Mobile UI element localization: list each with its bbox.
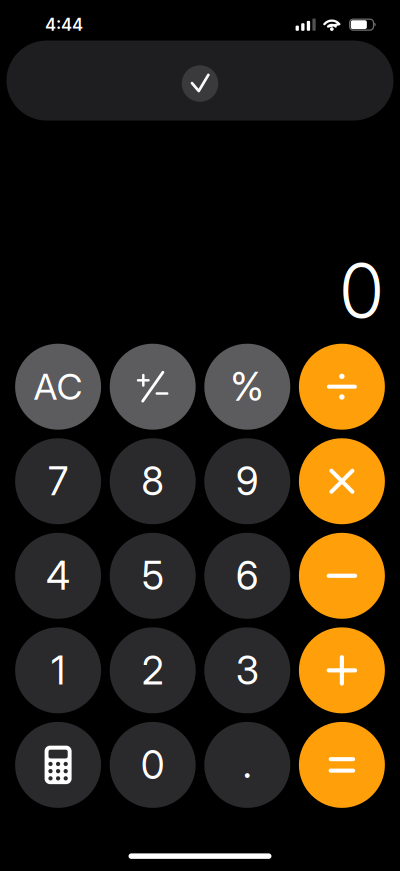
- button[interactable]: Divide: [299, 344, 385, 430]
- staticText: .: [243, 740, 252, 787]
- button[interactable]: Equals: [299, 722, 385, 808]
- button[interactable]: 3: [204, 627, 290, 713]
- button[interactable]: 7: [15, 438, 101, 524]
- staticText: 6: [236, 552, 259, 599]
- button[interactable]: 1: [15, 627, 101, 713]
- staticText: 1: [51, 647, 65, 694]
- staticText: 4:44: [45, 15, 83, 35]
- button[interactable]: Plus: [299, 627, 385, 713]
- button[interactable]: Minus: [299, 533, 385, 619]
- staticText: 8: [141, 458, 164, 505]
- button[interactable]: Multiply: [299, 438, 385, 524]
- button[interactable]: 6: [204, 533, 290, 619]
- button[interactable]: 0: [110, 722, 196, 808]
- staticText: 0: [141, 741, 165, 788]
- button[interactable]: 8: [110, 438, 196, 524]
- button[interactable]: 2: [110, 627, 196, 713]
- staticText: 2: [142, 647, 164, 694]
- button[interactable]: Calculator history: [15, 722, 101, 808]
- staticText: 7: [48, 458, 68, 505]
- staticText: AC: [34, 365, 83, 408]
- staticText: 3: [236, 647, 259, 694]
- button[interactable]: 4: [15, 533, 101, 619]
- button[interactable]: 9: [204, 438, 290, 524]
- staticText: 4: [46, 552, 70, 599]
- staticText: 5: [142, 552, 164, 599]
- button[interactable]: 5: [110, 533, 196, 619]
- button[interactable]: %: [204, 344, 290, 430]
- button[interactable]: Toggle sign: [110, 344, 196, 430]
- staticText: 0: [338, 245, 384, 335]
- staticText: 9: [236, 458, 259, 505]
- button[interactable]: .: [204, 722, 290, 808]
- staticText: %: [230, 363, 264, 410]
- button[interactable]: AC: [15, 344, 101, 430]
